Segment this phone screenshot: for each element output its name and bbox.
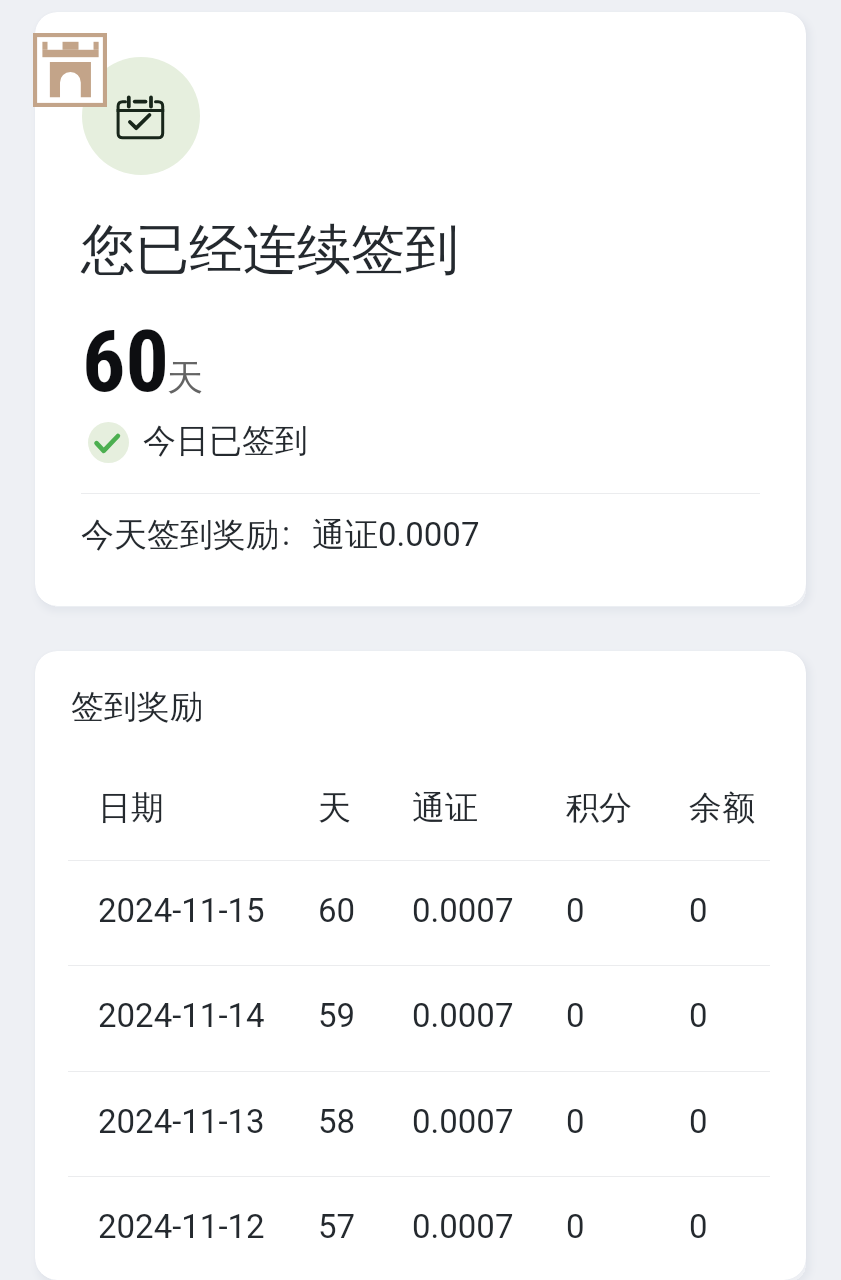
staticText: 0 — [566, 1207, 585, 1246]
staticText: 0 — [689, 1102, 708, 1141]
staticText: 0 — [566, 891, 585, 930]
staticText: 通证 — [412, 787, 478, 829]
staticText: 0.0007 — [412, 996, 514, 1035]
staticText: 天 — [167, 355, 203, 400]
staticText: 60 — [318, 891, 356, 930]
staticText: 57 — [318, 1207, 356, 1246]
button[interactable]: 2024-11-12 — [35, 1176, 806, 1277]
staticText: 60 — [82, 311, 169, 412]
button[interactable]: 2024-11-14 — [35, 965, 806, 1066]
staticText: 59 — [318, 996, 356, 1035]
staticText: 0.0007 — [412, 1207, 514, 1246]
staticText: 0.0007 — [412, 1102, 514, 1141]
staticText: 0 — [689, 891, 708, 930]
staticText: 您已经连续签到 — [81, 216, 459, 284]
staticText: 签到奖励 — [71, 686, 203, 728]
staticText: 58 — [318, 1102, 356, 1141]
staticText: 通证0.0007 — [312, 514, 480, 556]
staticText: 0 — [689, 996, 708, 1035]
staticText: 天 — [318, 787, 351, 829]
staticText: 2024-11-14 — [98, 996, 265, 1035]
button[interactable]: 2024-11-15 — [35, 860, 806, 961]
staticText: 0.0007 — [412, 891, 514, 930]
staticText: 今天签到奖励 — [81, 514, 279, 556]
staticText: 今日已签到 — [143, 420, 308, 462]
button[interactable]: 2024-11-13 — [35, 1071, 806, 1172]
staticText: 日期 — [98, 787, 164, 829]
staticText: 积分 — [566, 787, 632, 829]
staticText: 0 — [689, 1207, 708, 1246]
staticText: 2024-11-15 — [98, 891, 265, 930]
staticText: 2024-11-12 — [98, 1207, 265, 1246]
staticText: 余额 — [689, 787, 755, 829]
staticText: 0 — [566, 996, 585, 1035]
staticText: : — [282, 514, 290, 553]
staticText: 0 — [566, 1102, 585, 1141]
staticText: 2024-11-13 — [98, 1102, 265, 1141]
other: Checked in today — [88, 422, 129, 463]
